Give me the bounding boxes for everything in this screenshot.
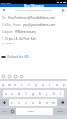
button[interactable]: j [43, 90, 50, 97]
staticText: y [35, 83, 37, 87]
button[interactable]: g [29, 90, 36, 97]
staticText: To: [2, 16, 7, 20]
staticText: you@youraddress.com [23, 23, 56, 27]
staticText: h [39, 92, 41, 96]
button[interactable]: p [60, 81, 67, 88]
button[interactable]: Attach [0, 73, 6, 79]
staticText: b [39, 101, 41, 105]
button[interactable]: x [15, 99, 22, 106]
button[interactable]: More [18, 73, 24, 79]
staticText: Subject: [2, 30, 14, 34]
staticText: k [53, 92, 55, 96]
button[interactable]: c [22, 99, 29, 106]
staticText: m [52, 101, 55, 105]
button[interactable]: Camera [6, 73, 12, 79]
button[interactable]: Subject: [0, 28, 67, 35]
staticText: w [8, 83, 11, 87]
staticText: d [18, 92, 20, 96]
button[interactable]: o [53, 81, 60, 88]
staticText: HW#necessary [15, 30, 36, 34]
staticText: o [56, 83, 58, 87]
staticText: t [28, 83, 30, 87]
staticText: space [28, 110, 34, 113]
button[interactable]: h [36, 90, 43, 97]
staticText: 2. (10 pts.) [2, 41, 15, 44]
button[interactable]: q [0, 81, 6, 88]
button[interactable]: d [15, 90, 22, 97]
button[interactable]: k [50, 90, 57, 97]
button[interactable]: . [45, 108, 53, 115]
staticText: i [49, 83, 50, 87]
staticText: q [2, 83, 4, 87]
staticText: p [63, 83, 65, 87]
button[interactable]: return [53, 108, 67, 115]
button[interactable]: Outlook for iOS [1, 54, 29, 59]
staticText: f [25, 92, 27, 96]
button[interactable]: b [36, 99, 43, 106]
staticText: u [42, 83, 44, 87]
staticText: 1. (5 pts.) A. (b) Prof. Kim [2, 37, 37, 41]
button[interactable]: Close [0, 7, 7, 13]
button[interactable]: space [16, 108, 45, 115]
button[interactable] [8, 108, 16, 115]
button[interactable]: l [57, 90, 64, 97]
button[interactable]: m [50, 99, 57, 106]
staticText: ?123 [2, 110, 7, 113]
staticText: n [46, 101, 48, 105]
staticText: v [32, 101, 34, 105]
staticText: j [46, 92, 47, 96]
staticText: a [5, 92, 7, 96]
button[interactable] [57, 99, 67, 106]
button[interactable]: Photo [12, 73, 18, 79]
staticText: youraccount@youraddress.com [15, 8, 53, 11]
button[interactable]: Cc/Bcc, From: [0, 21, 67, 28]
staticText: z [11, 101, 13, 105]
button[interactable]: Send [59, 7, 67, 13]
staticText: r [21, 83, 23, 87]
staticText: Outlook for iOS [7, 55, 29, 59]
button[interactable]: v [29, 99, 36, 106]
button[interactable]: z [9, 99, 15, 106]
button[interactable]: w [6, 81, 12, 88]
staticText: e [14, 83, 16, 87]
button[interactable]: To: [0, 14, 67, 21]
button[interactable]: i [46, 81, 53, 88]
button[interactable]: a [3, 90, 9, 97]
staticText: Cc/Bcc, From: [2, 23, 22, 27]
staticText: s [11, 92, 13, 96]
button[interactable] [0, 99, 9, 106]
staticText: l [60, 92, 61, 96]
button[interactable]: r [18, 81, 25, 88]
button[interactable]: u [39, 81, 46, 88]
button[interactable]: t [25, 81, 32, 88]
button[interactable]: s [9, 90, 15, 97]
staticText: 9:41 AM [1, 1, 11, 4]
staticText: g [32, 92, 34, 96]
button[interactable]: ?123 [0, 108, 8, 115]
staticText: YourProfessor@YourAddress.com [8, 16, 56, 20]
button[interactable]: e [12, 81, 18, 88]
button[interactable]: f [22, 90, 29, 97]
staticText: New Message [24, 4, 44, 7]
staticText: x [18, 101, 20, 105]
button[interactable]: n [43, 99, 50, 106]
staticText: c [25, 101, 27, 105]
button[interactable]: y [32, 81, 39, 88]
staticText: . [49, 110, 50, 114]
staticText: return [57, 110, 63, 113]
